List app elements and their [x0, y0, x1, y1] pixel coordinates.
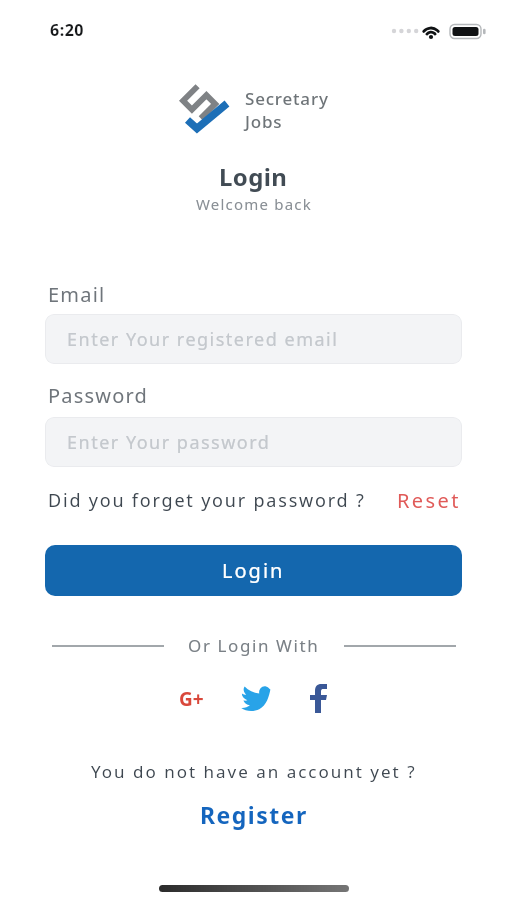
staticText: Did you forget your password ?	[48, 488, 366, 513]
staticText: 6:20	[50, 19, 84, 41]
button[interactable]	[240, 686, 271, 711]
staticText: Enter Your password	[67, 430, 271, 455]
staticText: You do not have an account yet ?	[91, 760, 417, 783]
button[interactable]: Login	[45, 545, 462, 596]
staticText: Or Login With	[188, 634, 320, 657]
staticText: G+	[179, 686, 204, 712]
button[interactable]: G+	[179, 686, 204, 712]
button[interactable]: Enter Your password	[45, 417, 462, 467]
button[interactable]: Reset	[397, 487, 461, 514]
staticText: Secretary	[245, 87, 329, 110]
button[interactable]: Enter Your registered email	[45, 314, 462, 364]
staticText: Login	[222, 557, 285, 584]
button[interactable]	[307, 684, 328, 713]
staticText: Welcome back	[196, 194, 312, 214]
staticText: Login	[219, 160, 288, 193]
staticText: Jobs	[245, 110, 283, 133]
staticText: Enter Your registered email	[67, 327, 339, 352]
staticText: Password	[48, 382, 149, 409]
staticText: Email	[48, 281, 106, 308]
button[interactable]: Register	[200, 799, 308, 830]
